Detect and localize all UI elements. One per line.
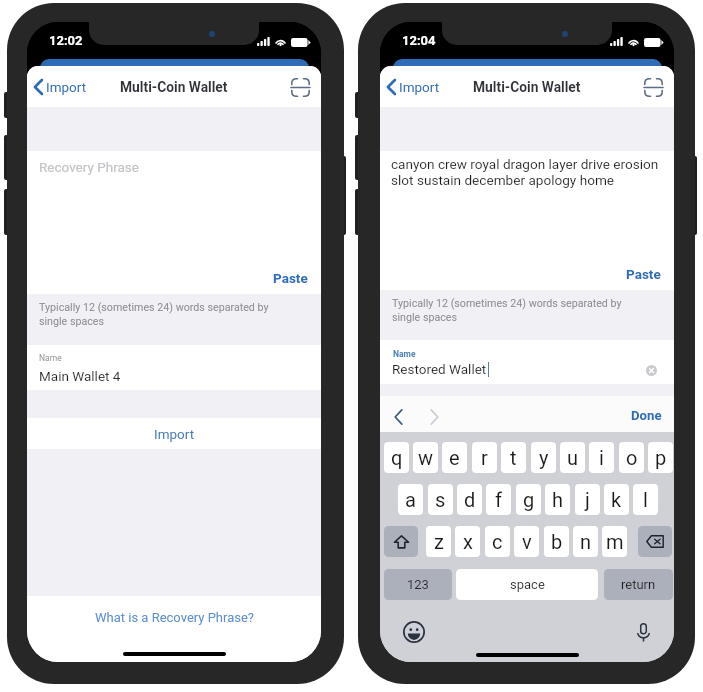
staticText: Import bbox=[399, 79, 440, 95]
staticText: w bbox=[418, 446, 434, 469]
staticText: What is a Recovery Phrase? bbox=[95, 610, 254, 625]
staticText: return bbox=[621, 577, 656, 592]
staticText: y bbox=[539, 446, 549, 469]
staticText: Typically 12 (sometimes 24) words separa… bbox=[392, 297, 630, 323]
button[interactable]: Scan QR code bbox=[636, 70, 670, 104]
staticText: Import bbox=[46, 79, 87, 95]
staticText: z bbox=[434, 530, 444, 553]
staticText: canyon crew royal dragon layer drive ero… bbox=[391, 156, 669, 189]
button[interactable]: Next field bbox=[421, 404, 447, 430]
staticText: Restored Wallet bbox=[392, 361, 487, 377]
button[interactable]: m bbox=[602, 526, 627, 557]
staticText: q bbox=[391, 446, 403, 469]
button[interactable]: return bbox=[604, 569, 673, 600]
button[interactable]: e bbox=[442, 442, 467, 473]
button[interactable]: Import bbox=[27, 418, 321, 449]
staticText: i bbox=[599, 446, 604, 469]
staticText: l bbox=[643, 488, 648, 511]
button[interactable]: Paste bbox=[612, 258, 674, 290]
staticText: 123 bbox=[407, 577, 429, 592]
staticText: space bbox=[510, 577, 545, 592]
staticText: t bbox=[510, 446, 517, 469]
staticText: p bbox=[655, 446, 667, 469]
button[interactable]: t bbox=[501, 442, 526, 473]
button[interactable]: y bbox=[531, 442, 556, 473]
button[interactable]: Import bbox=[380, 73, 450, 101]
button[interactable]: r bbox=[472, 442, 497, 473]
staticText: Import bbox=[154, 426, 195, 442]
button[interactable]: i bbox=[589, 442, 614, 473]
button[interactable]: d bbox=[457, 484, 482, 515]
staticText: Recovery Phrase bbox=[39, 159, 139, 175]
button[interactable]: f bbox=[486, 484, 511, 515]
staticText: j bbox=[585, 488, 590, 511]
staticText: Name bbox=[39, 353, 62, 363]
button[interactable]: What is a Recovery Phrase? bbox=[87, 608, 262, 627]
button[interactable]: 123 bbox=[384, 569, 452, 600]
button[interactable]: c bbox=[485, 526, 510, 557]
button[interactable]: Dictation bbox=[632, 621, 654, 643]
staticText: f bbox=[495, 488, 502, 511]
staticText: 12:02 bbox=[49, 33, 83, 48]
button[interactable]: u bbox=[560, 442, 585, 473]
button[interactable]: a bbox=[398, 484, 423, 515]
button[interactable]: Paste bbox=[259, 262, 321, 294]
button[interactable]: j bbox=[575, 484, 600, 515]
button[interactable]: space bbox=[456, 569, 598, 600]
button[interactable]: l bbox=[633, 484, 658, 515]
button[interactable]: Shift bbox=[384, 526, 418, 557]
staticText: n bbox=[580, 530, 592, 553]
staticText: h bbox=[552, 488, 564, 511]
button[interactable]: z bbox=[426, 526, 451, 557]
staticText: o bbox=[626, 446, 638, 469]
button[interactable]: q bbox=[384, 442, 409, 473]
staticText: c bbox=[492, 530, 503, 553]
staticText: u bbox=[567, 446, 579, 469]
button[interactable]: g bbox=[516, 484, 541, 515]
staticText: 12:04 bbox=[402, 33, 436, 48]
button[interactable]: Emoji keyboard bbox=[403, 621, 425, 643]
staticText: Done bbox=[631, 408, 662, 423]
button[interactable]: Clear text bbox=[640, 359, 662, 381]
button[interactable]: h bbox=[545, 484, 570, 515]
staticText: r bbox=[481, 446, 488, 469]
staticText: b bbox=[551, 530, 563, 553]
button[interactable]: n bbox=[573, 526, 598, 557]
button[interactable]: o bbox=[619, 442, 644, 473]
staticText: Multi-Coin Wallet bbox=[120, 79, 228, 95]
button[interactable]: p bbox=[648, 442, 673, 473]
staticText: k bbox=[611, 488, 622, 511]
staticText: Paste bbox=[273, 270, 308, 286]
button[interactable]: Import bbox=[27, 73, 97, 101]
button[interactable]: Backspace bbox=[638, 526, 672, 557]
staticText: v bbox=[522, 530, 532, 553]
button[interactable]: x bbox=[455, 526, 480, 557]
button[interactable]: b bbox=[544, 526, 569, 557]
staticText: a bbox=[405, 488, 416, 511]
button[interactable]: Scan QR code bbox=[283, 70, 317, 104]
staticText: e bbox=[449, 446, 460, 469]
button[interactable]: v bbox=[514, 526, 539, 557]
button[interactable]: k bbox=[604, 484, 629, 515]
button[interactable]: Done bbox=[617, 400, 674, 431]
staticText: m bbox=[606, 530, 624, 553]
button[interactable]: Previous field bbox=[385, 404, 411, 430]
staticText: x bbox=[463, 530, 473, 553]
staticText: Main Wallet 4 bbox=[39, 368, 121, 384]
staticText: Name bbox=[393, 349, 416, 359]
button[interactable]: w bbox=[413, 442, 438, 473]
staticText: d bbox=[464, 488, 476, 511]
button[interactable]: s bbox=[428, 484, 453, 515]
staticText: Paste bbox=[626, 266, 661, 282]
staticText: Typically 12 (sometimes 24) words separa… bbox=[39, 301, 277, 327]
staticText: s bbox=[435, 488, 446, 511]
staticText: g bbox=[523, 488, 535, 511]
staticText: Multi-Coin Wallet bbox=[473, 79, 581, 95]
